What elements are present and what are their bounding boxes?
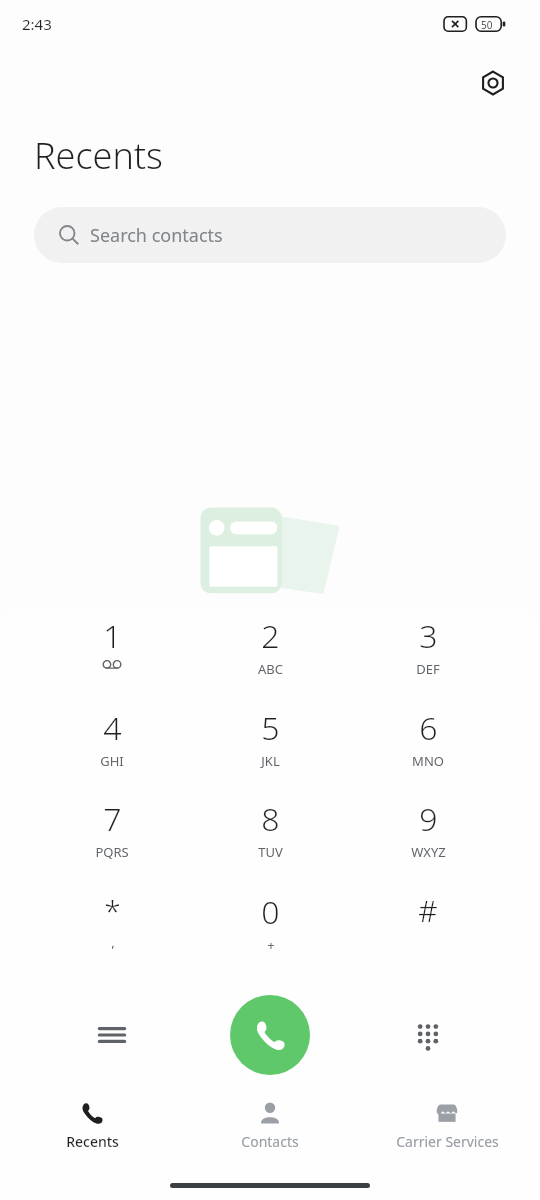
staticText: Recents — [34, 131, 163, 180]
staticText: PQRS — [95, 843, 129, 861]
button[interactable]: Carrier Services — [367, 1098, 527, 1162]
button[interactable]: Call history options — [84, 1007, 140, 1063]
button[interactable]: Call — [230, 995, 310, 1075]
button[interactable]: 9 — [376, 797, 480, 885]
staticText: 5 — [261, 706, 280, 750]
staticText: 50 — [481, 18, 493, 32]
button[interactable]: Dialpad — [400, 1007, 456, 1063]
staticText: 9 — [419, 797, 438, 841]
button[interactable]: 4 — [60, 706, 164, 794]
button[interactable]: Recents — [12, 1098, 172, 1162]
staticText: TUV — [258, 843, 283, 861]
staticText: 7 — [103, 797, 122, 841]
staticText: 8 — [261, 797, 280, 841]
button[interactable]: 1 — [60, 614, 164, 702]
staticText: * — [104, 890, 121, 931]
staticText: 1 — [103, 614, 122, 658]
staticText: JKL — [261, 752, 280, 770]
staticText: MNO — [412, 752, 444, 770]
staticText: 0 — [261, 890, 280, 934]
button[interactable]: * — [60, 890, 164, 978]
staticText: Contacts — [241, 1132, 299, 1151]
button[interactable]: 3 — [376, 614, 480, 702]
staticText: 3 — [419, 614, 438, 658]
button[interactable]: Settings — [470, 60, 516, 106]
staticText: 2:43 — [22, 14, 52, 34]
button[interactable]: 8 — [218, 797, 322, 885]
staticText: 2 — [261, 614, 280, 658]
button[interactable]: Search contacts — [34, 207, 506, 263]
button[interactable]: # — [376, 890, 480, 978]
staticText: # — [418, 890, 438, 931]
button[interactable]: Contacts — [190, 1098, 350, 1162]
staticText: Carrier Services — [396, 1132, 499, 1151]
button[interactable]: 7 — [60, 797, 164, 885]
staticText: ABC — [258, 660, 283, 678]
staticText: , — [111, 933, 115, 951]
button[interactable]: 5 — [218, 706, 322, 794]
staticText: 4 — [103, 706, 122, 750]
staticText: Recents — [66, 1132, 119, 1151]
staticText: Search contacts — [90, 223, 223, 248]
staticText: GHI — [100, 752, 124, 770]
button[interactable]: 2 — [218, 614, 322, 702]
button[interactable]: 6 — [376, 706, 480, 794]
staticText: + — [267, 936, 275, 954]
staticText: DEF — [416, 660, 440, 678]
staticText: WXYZ — [411, 843, 446, 861]
staticText: 6 — [419, 706, 438, 750]
button[interactable]: 0 — [218, 890, 322, 978]
